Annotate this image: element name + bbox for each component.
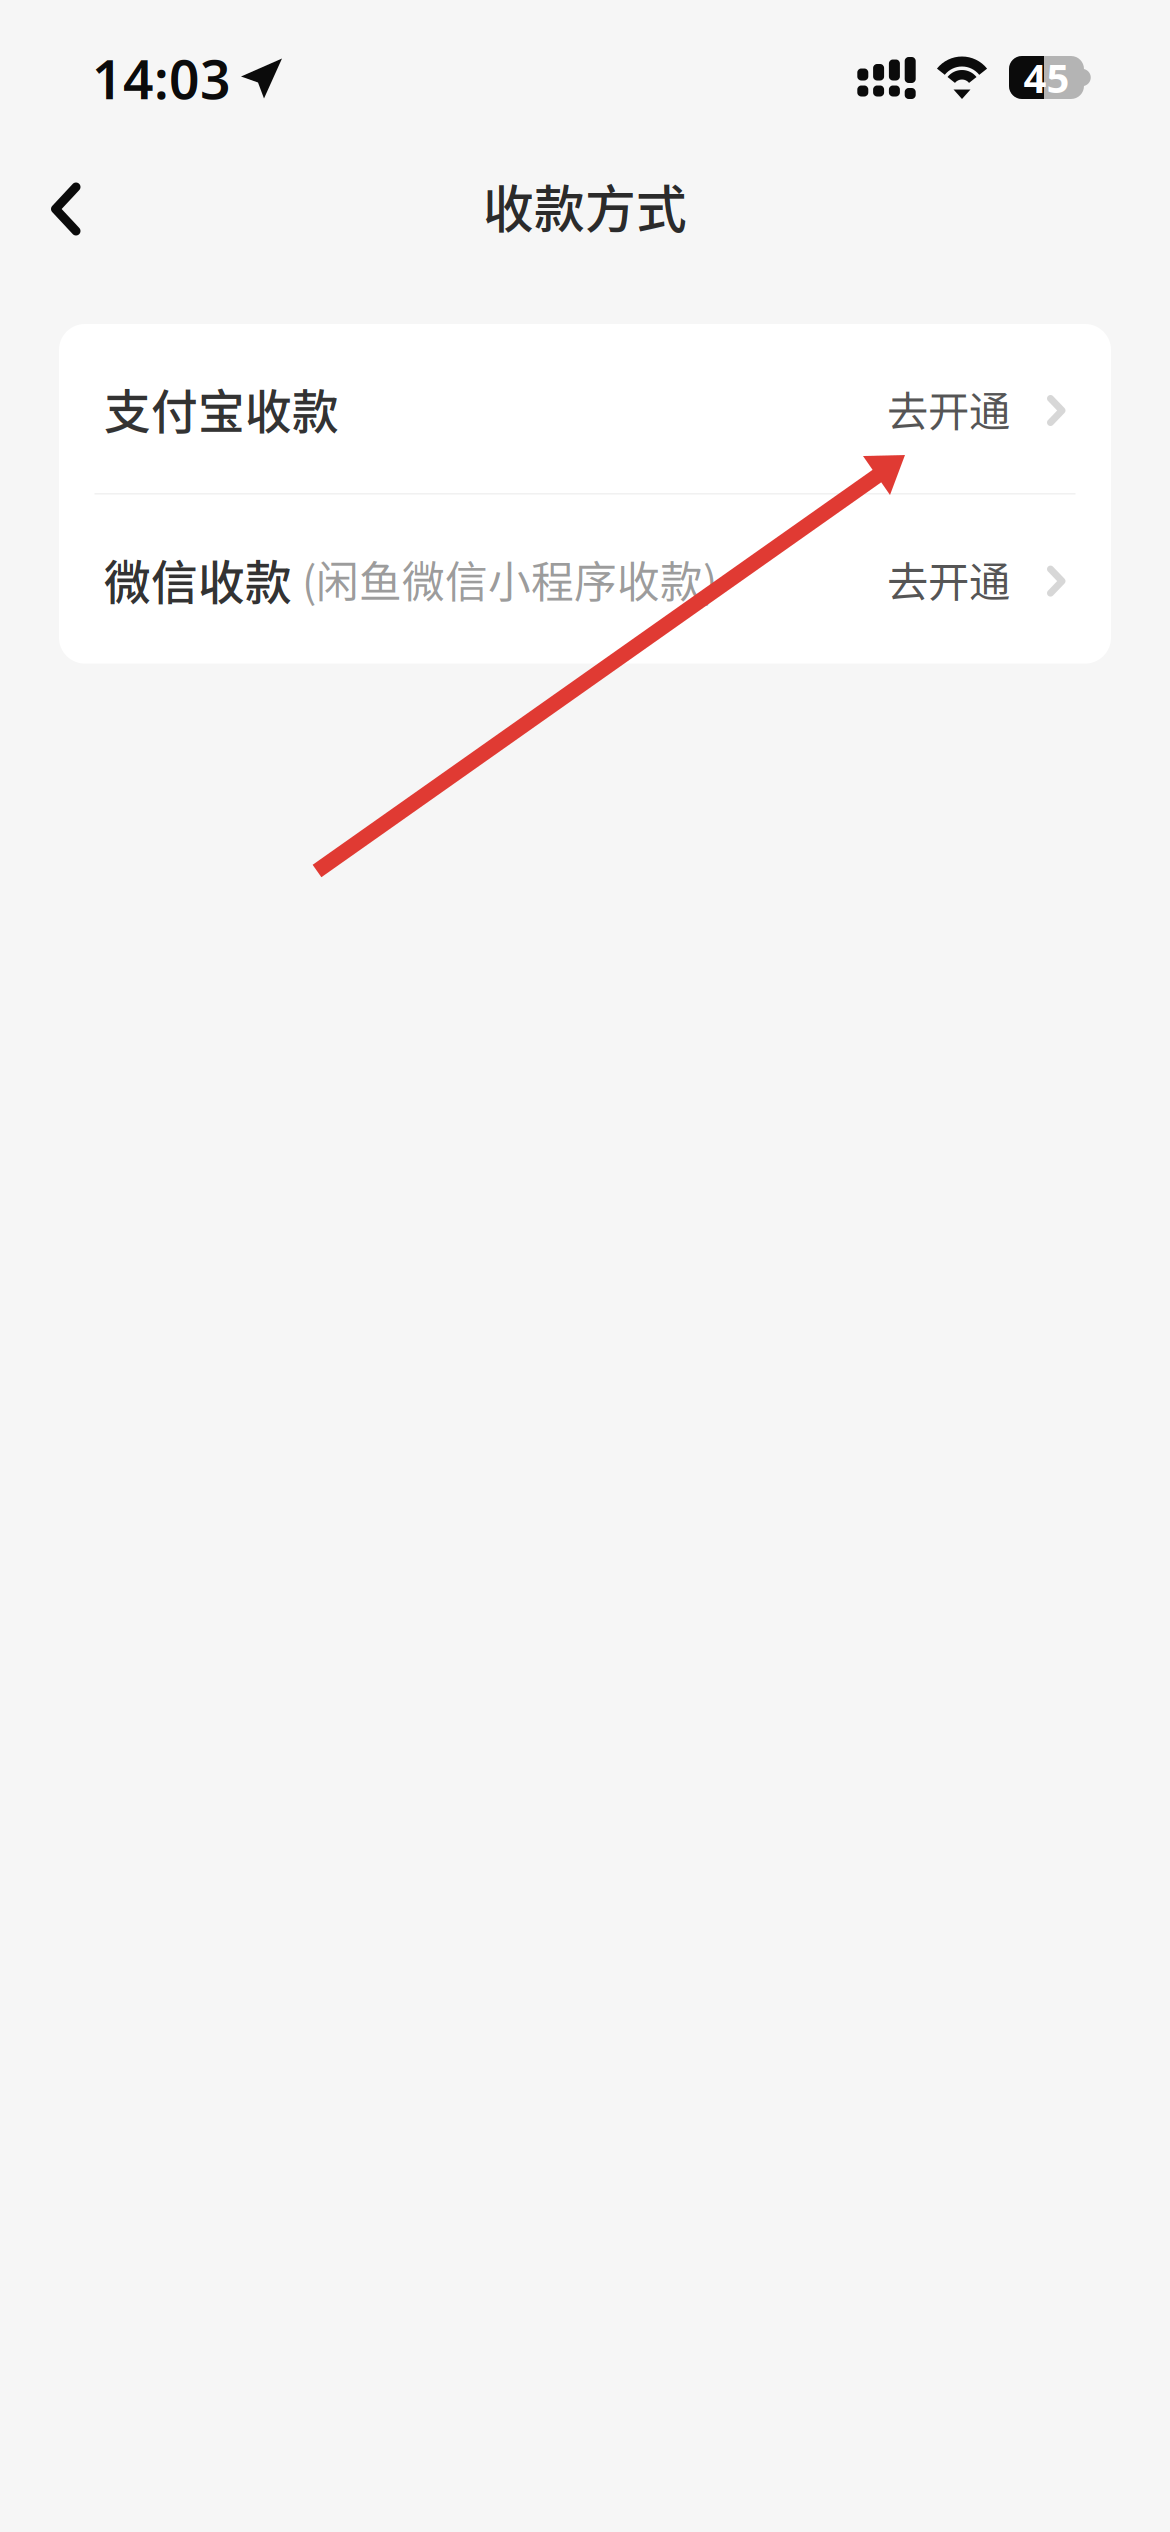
staticText: 去开通 — [887, 549, 1010, 609]
staticText: 去开通 — [887, 379, 1010, 438]
staticText: (闲鱼微信小程序收款) — [302, 548, 717, 610]
staticText: 45 — [1023, 51, 1069, 104]
staticText: 微信收款 — [104, 545, 292, 613]
staticText: 14:03 — [92, 43, 231, 114]
staticText: 收款方式 — [483, 169, 687, 243]
staticText: 支付宝收款 — [104, 375, 339, 442]
button[interactable]: 微信收款 — [59, 495, 1111, 664]
button[interactable]: Back — [0, 117, 131, 295]
button[interactable]: 支付宝收款 — [59, 324, 1111, 493]
